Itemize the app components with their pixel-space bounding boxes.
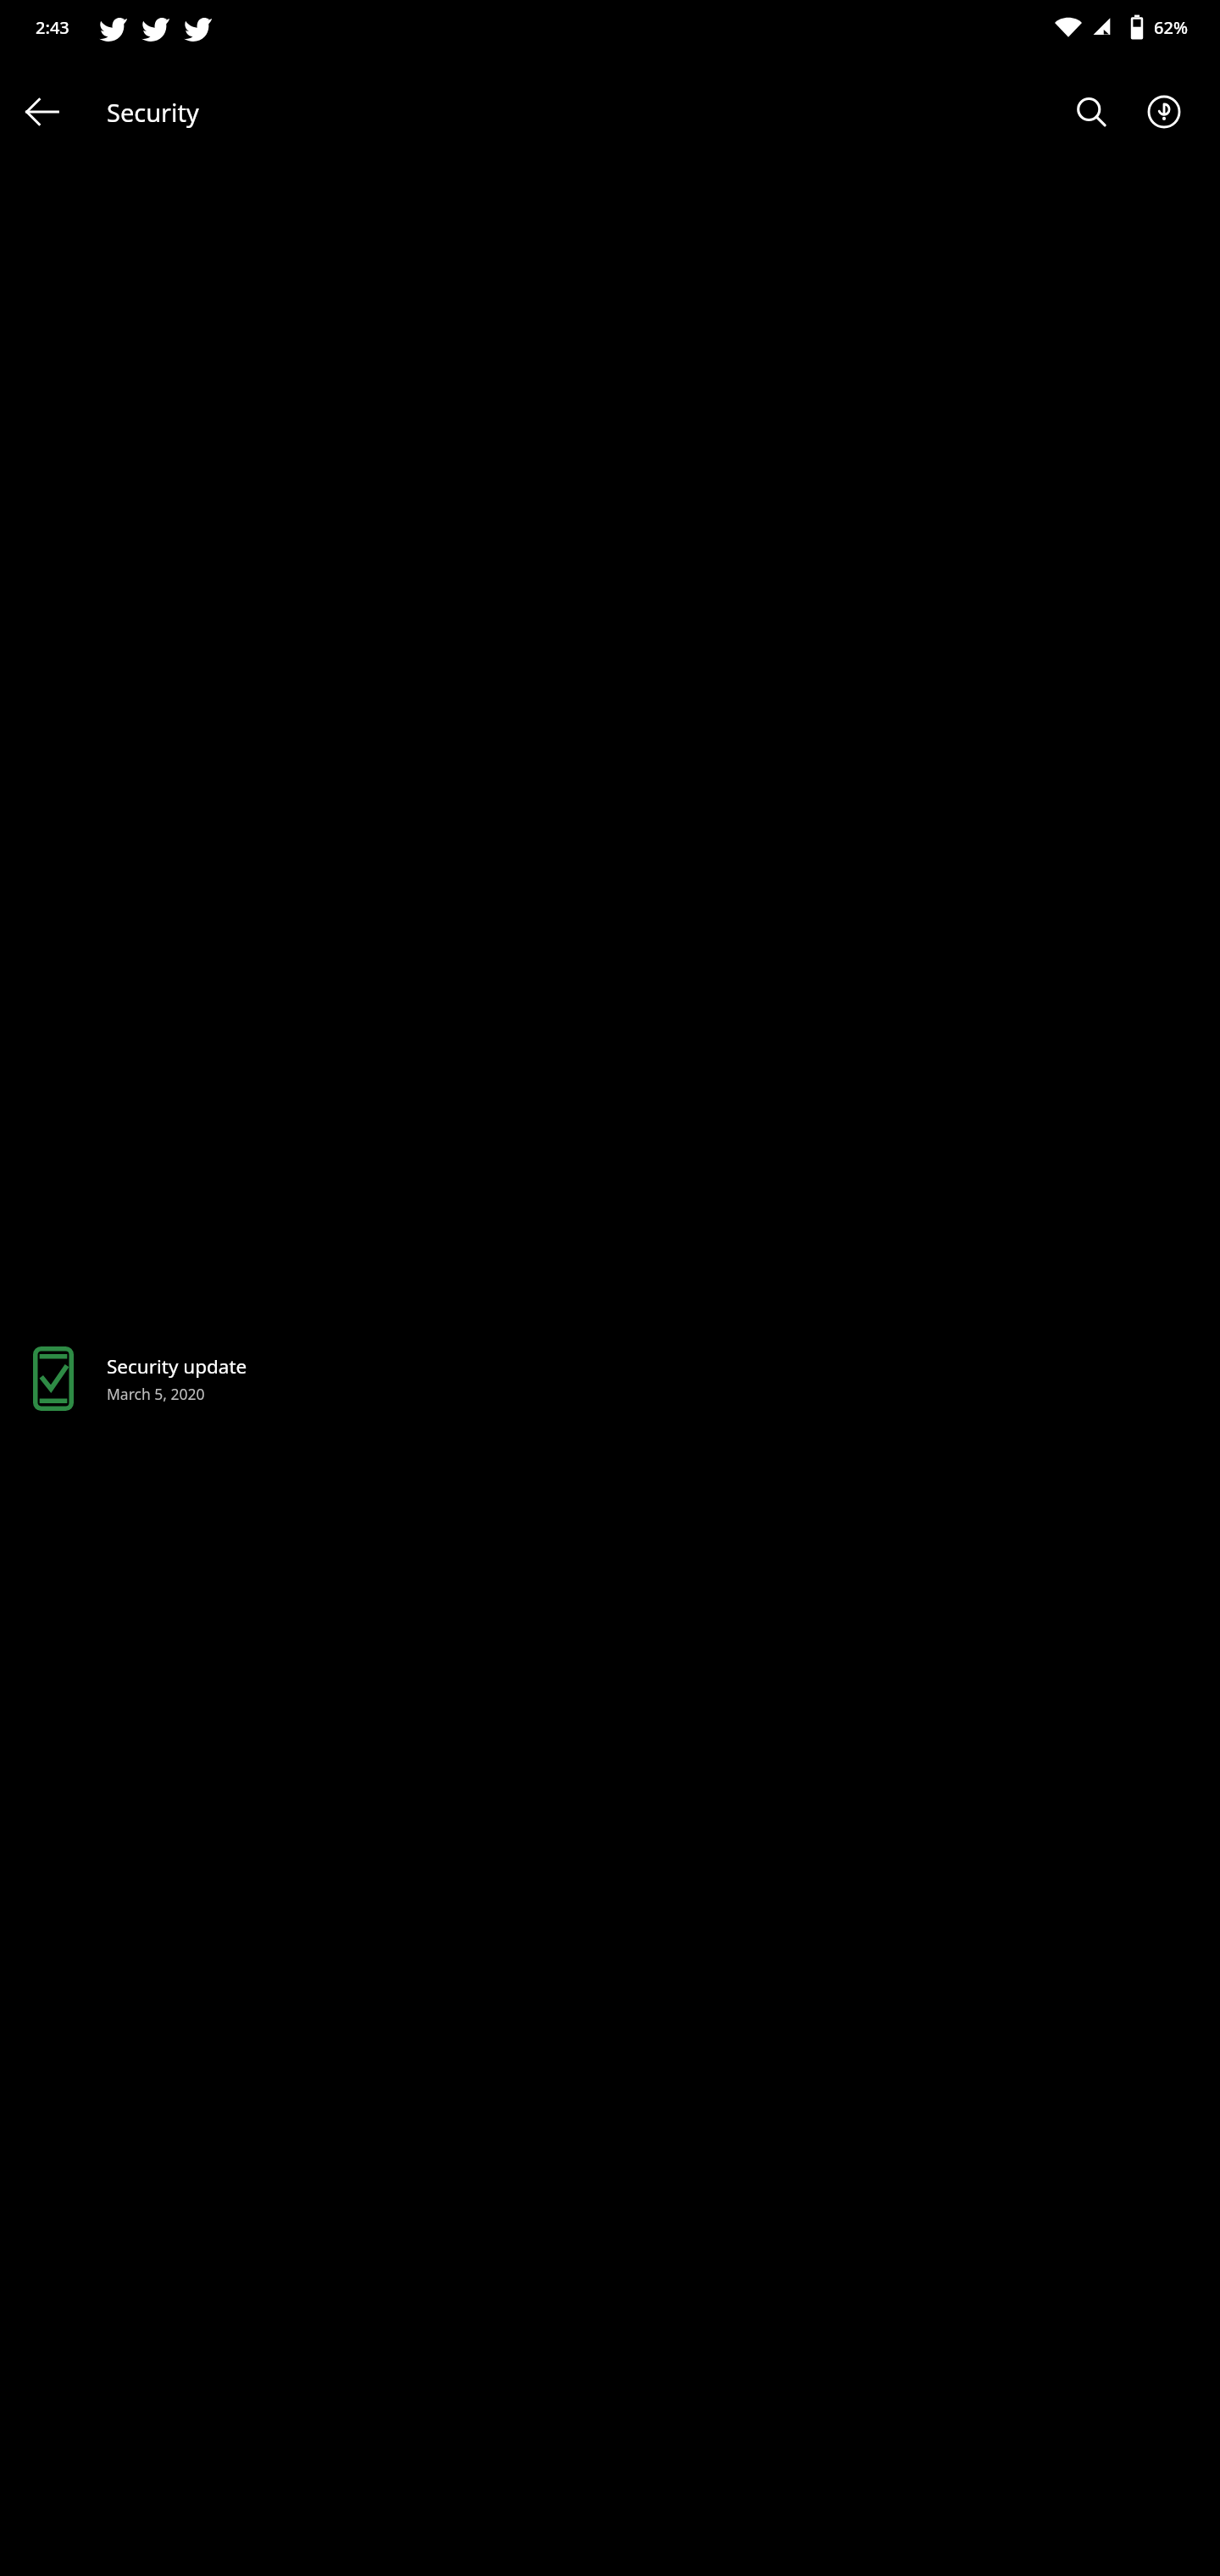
staticText: March 5, 2020 <box>107 1384 205 1404</box>
staticText: Security update <box>107 1353 247 1380</box>
staticText: 62% <box>1154 16 1188 39</box>
button[interactable]: Help <box>1128 76 1200 147</box>
button[interactable]: Search <box>1056 76 1127 147</box>
staticText: 2:43 <box>36 16 69 39</box>
staticText: Security <box>107 96 199 129</box>
button[interactable]: Back <box>12 81 73 142</box>
button[interactable]: Security update <box>0 169 1220 2576</box>
